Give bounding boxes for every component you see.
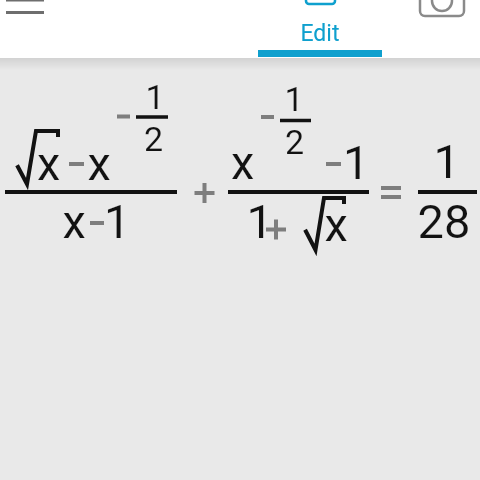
button[interactable] [258, 0, 382, 57]
button[interactable] [0, 0, 56, 48]
button[interactable] [408, 0, 480, 44]
